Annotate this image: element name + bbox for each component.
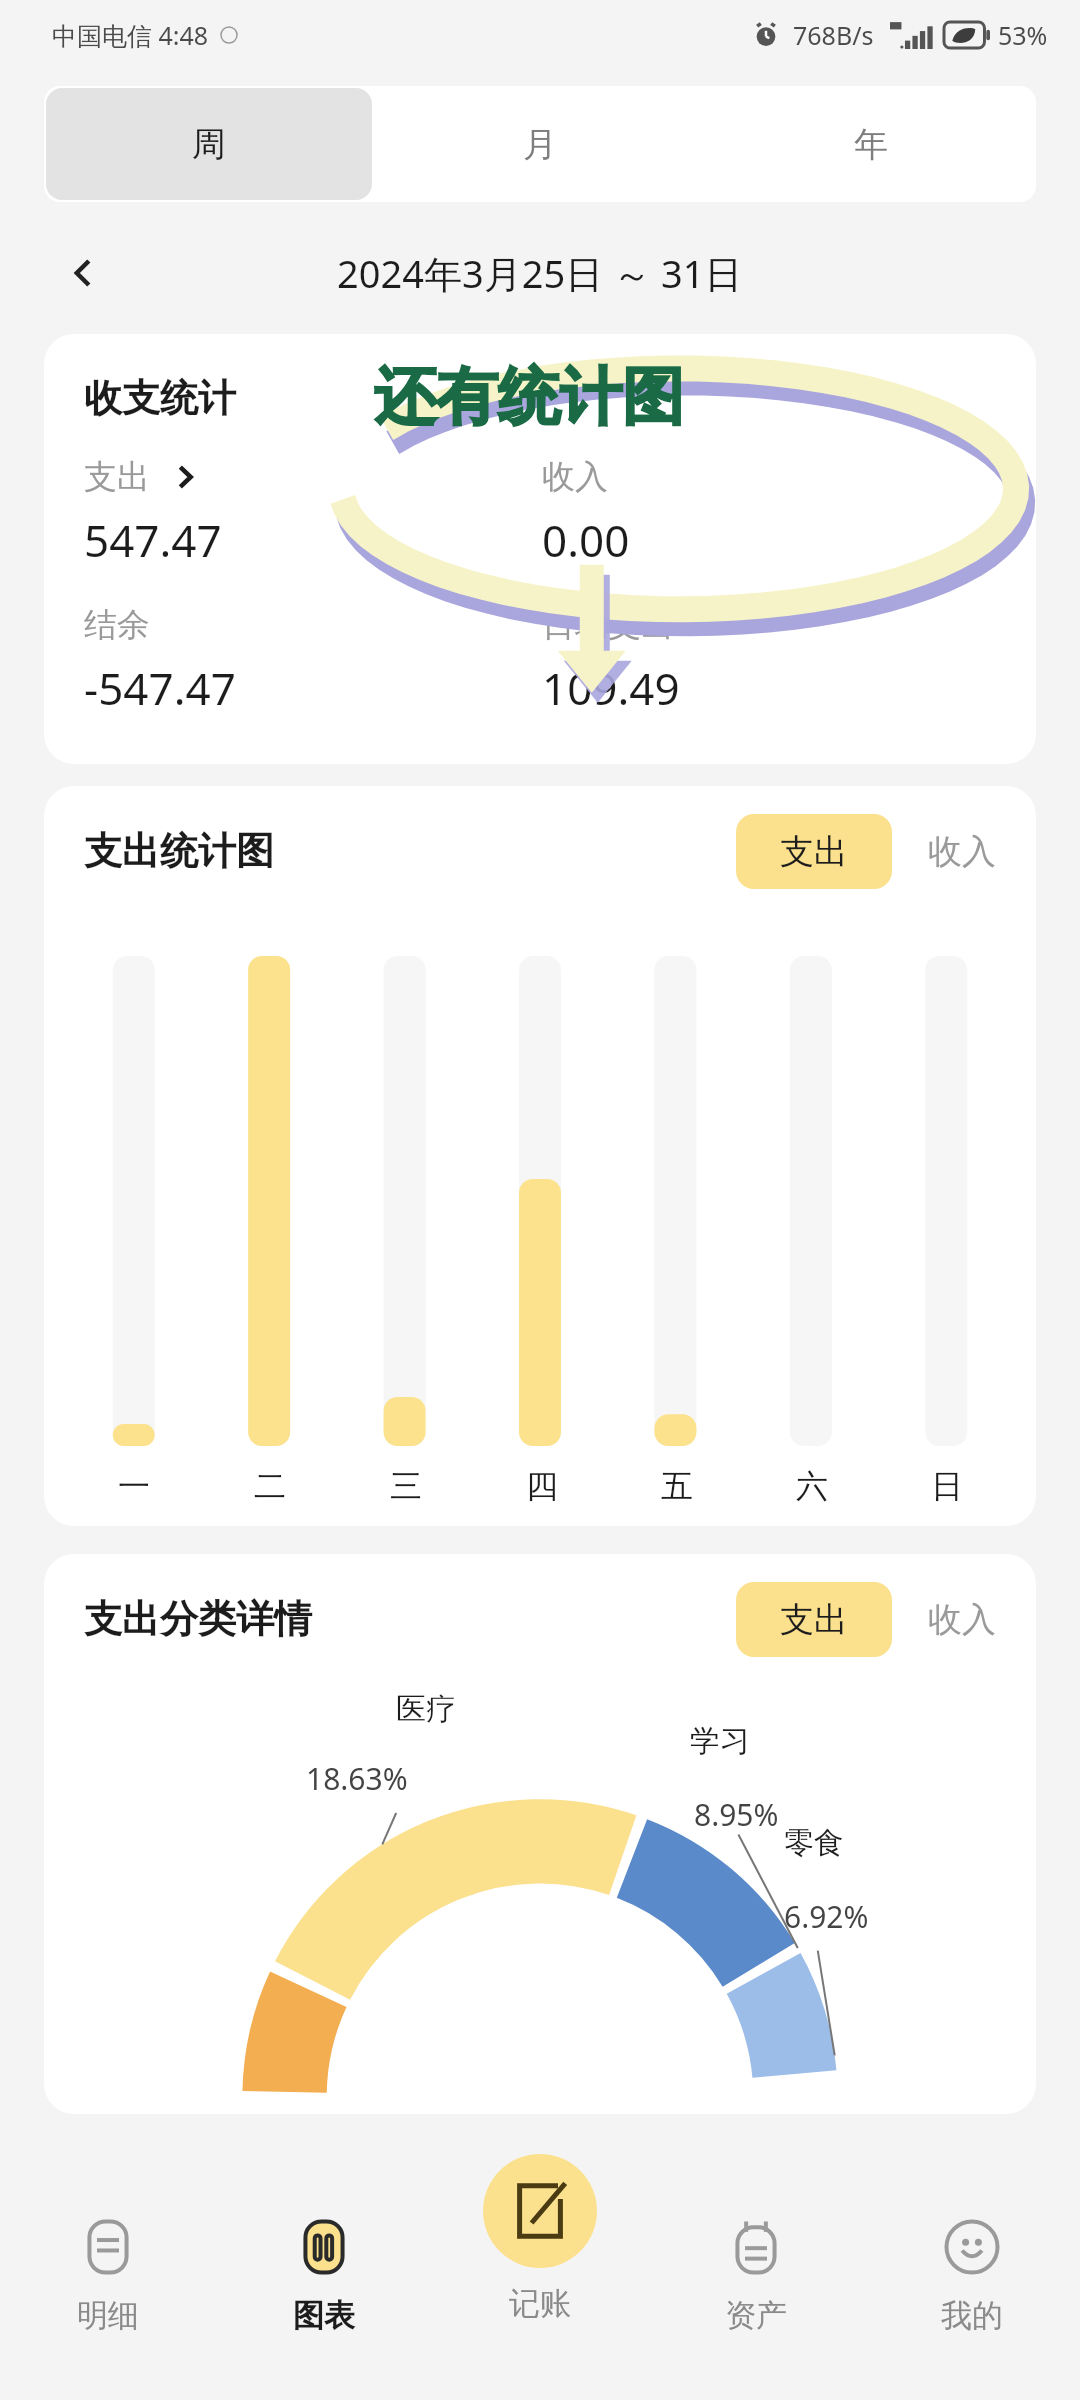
staticText: 53% (998, 18, 1048, 52)
button[interactable]: 月 (376, 88, 703, 200)
staticText: 学习 (690, 1722, 750, 1760)
button[interactable]: 支出 (736, 1582, 892, 1657)
staticText: 年 (854, 123, 888, 166)
staticText: 109.49 (542, 658, 680, 718)
staticText: 三 (390, 1466, 422, 1506)
staticText: 医疗 (396, 1690, 456, 1728)
button[interactable]: 支出 (736, 814, 892, 889)
staticText: -547.47 (84, 658, 236, 718)
staticText: 768B/s (793, 18, 874, 52)
staticText: 还有统计图 (374, 358, 684, 436)
button[interactable]: 年 (707, 88, 1034, 200)
staticText: 我的 (941, 2296, 1003, 2335)
staticText: 明细 (77, 2296, 139, 2335)
button[interactable]: 图表 (216, 2188, 432, 2400)
staticText: 结余 (84, 604, 150, 646)
staticText: 支出 (780, 830, 848, 873)
button[interactable]: 明细 (0, 2188, 216, 2400)
button[interactable]: 收入 (928, 830, 996, 873)
staticText: 收支统计 (84, 374, 236, 422)
staticText: 六 (796, 1466, 828, 1506)
staticText: 收入 (928, 1598, 996, 1641)
button[interactable]: 收入 (928, 1598, 996, 1641)
staticText: 支出 (84, 456, 150, 498)
staticText: 五 (661, 1466, 693, 1506)
button[interactable]: 周 (46, 88, 372, 200)
staticText: 记账 (509, 2284, 571, 2323)
staticText: 支出 (780, 1598, 848, 1641)
staticText: 四 (526, 1466, 558, 1506)
staticText: 日 (931, 1466, 963, 1506)
staticText: 一 (118, 1466, 150, 1506)
staticText: 支出统计图 (84, 827, 274, 875)
button[interactable]: 资产 (648, 2188, 864, 2400)
button[interactable]: 支出 (84, 456, 198, 498)
staticText: 收入 (542, 456, 608, 498)
button[interactable]: 我的 (864, 2188, 1080, 2400)
staticText: 资产 (725, 2296, 787, 2335)
staticText: 18.63% (306, 1758, 408, 1799)
button[interactable]: Previous week (48, 237, 120, 309)
staticText: 6.92% (784, 1896, 869, 1937)
staticText: 547.47 (84, 510, 222, 570)
staticText: 月 (523, 123, 557, 166)
staticText: 0.00 (542, 510, 630, 570)
staticText: 零食 (784, 1824, 844, 1862)
staticText: 周 (192, 123, 226, 166)
staticText: 支出分类详情 (84, 1595, 312, 1643)
button[interactable]: 记账 (432, 2188, 648, 2400)
staticText: 图表 (293, 2296, 355, 2335)
staticText: 2024年3月25日 ～ 31日 (337, 247, 743, 299)
staticText: 二 (254, 1466, 286, 1506)
staticText: 收入 (928, 830, 996, 873)
staticText: 日均支出 (542, 604, 674, 646)
staticText: 8.95% (694, 1794, 779, 1835)
staticText: 中国电信 4:48 (52, 18, 209, 52)
